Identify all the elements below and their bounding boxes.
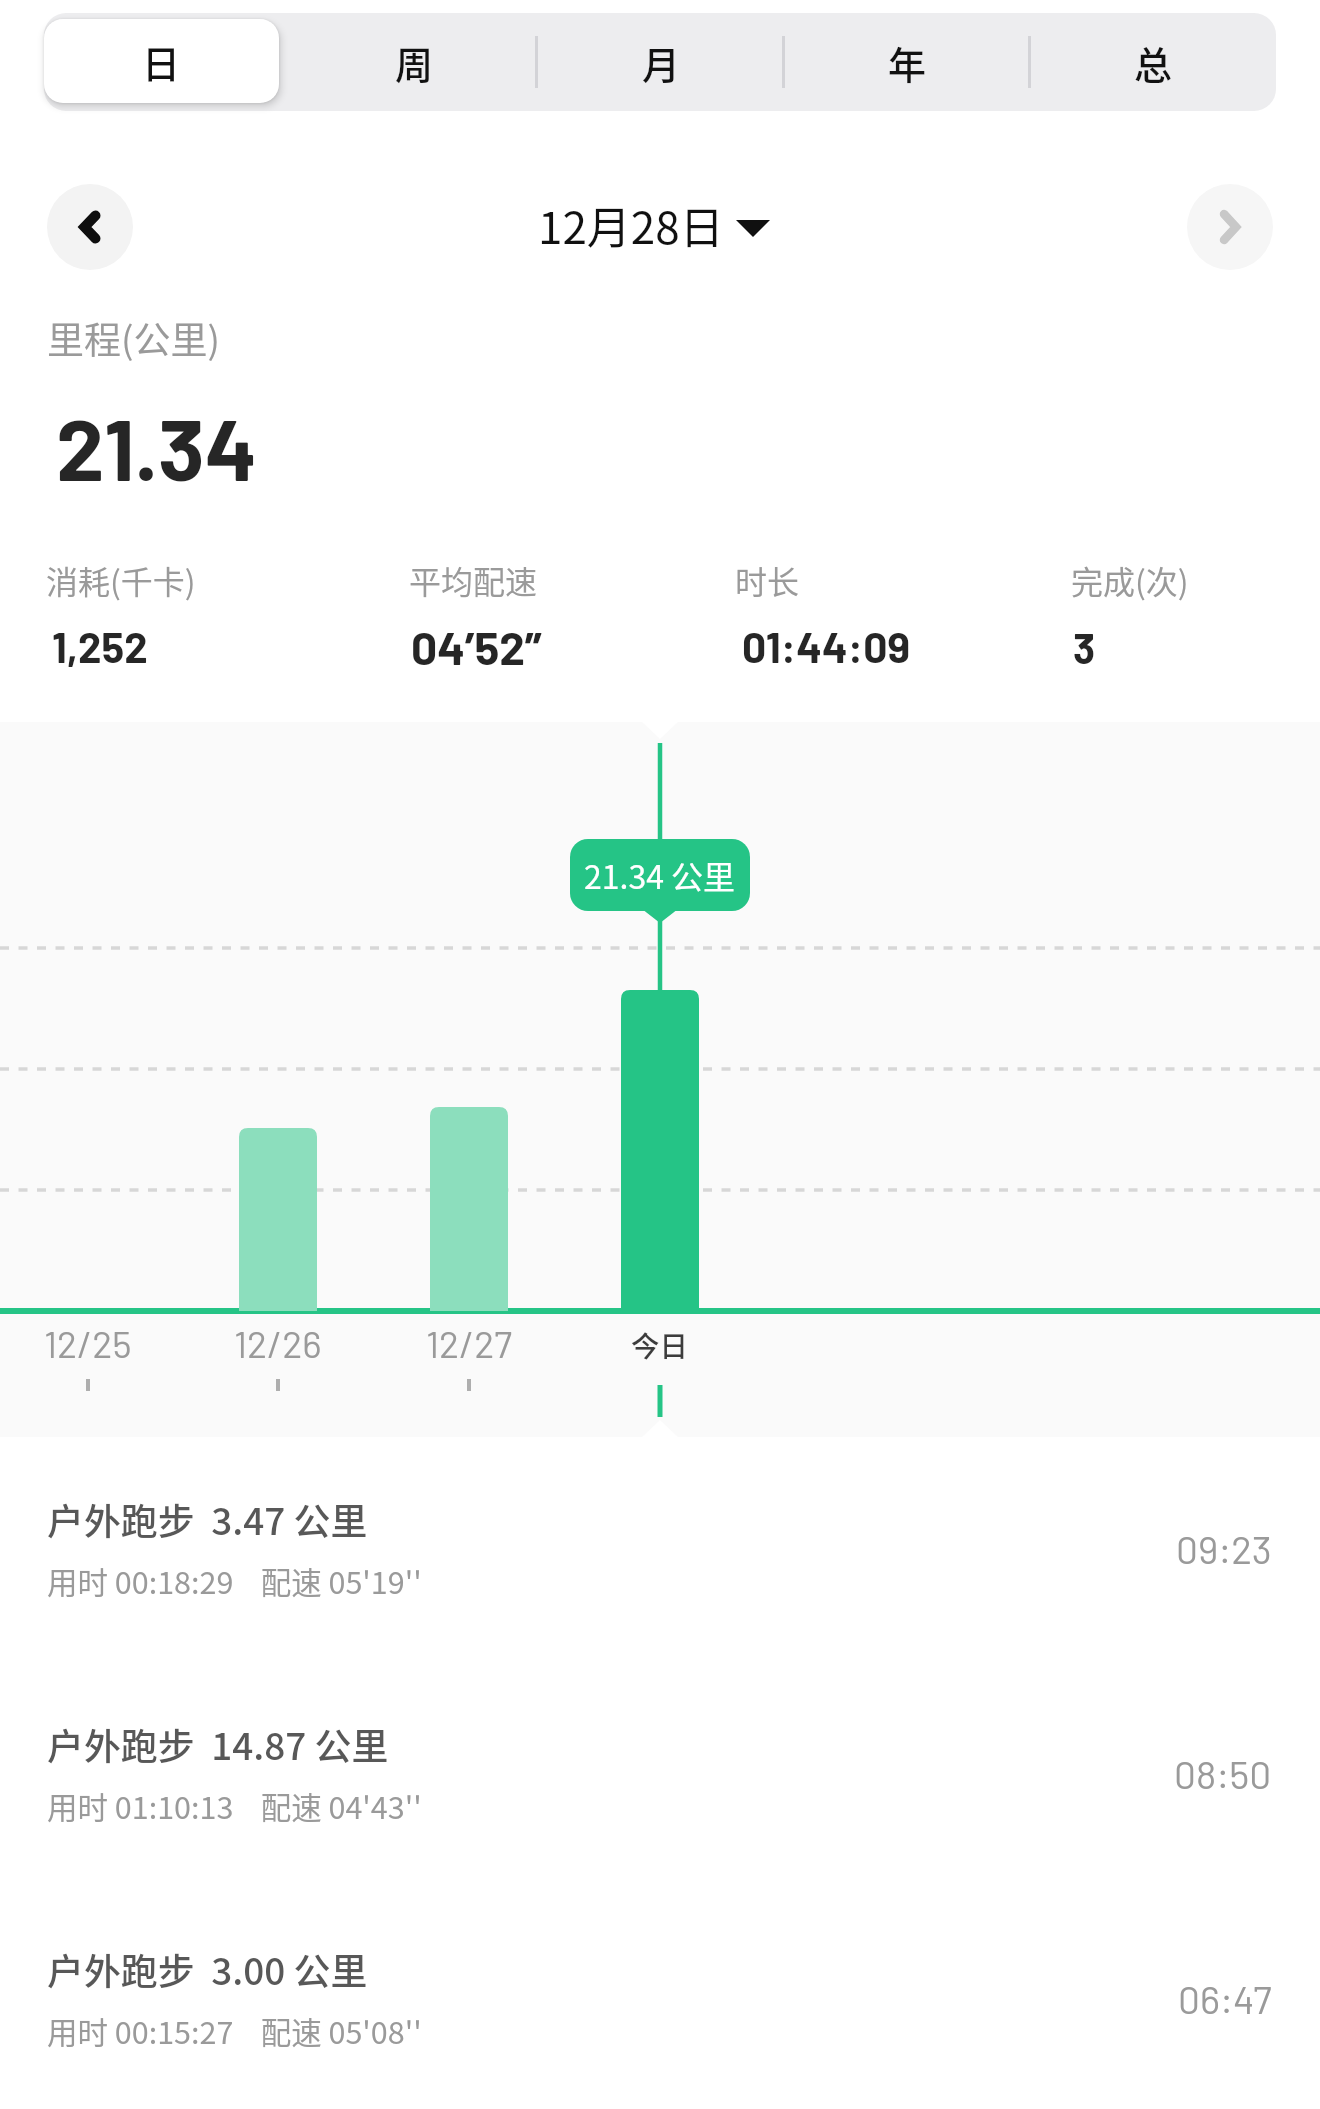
button[interactable]: Previous day <box>47 184 133 270</box>
staticText: 用时 00:15:27 配速 05'08'' <box>47 2009 422 2053</box>
staticText: 12/25 <box>44 1320 132 1365</box>
staticText: 今日 <box>631 1324 688 1365</box>
button[interactable]: Next day <box>1187 184 1273 270</box>
staticText: 户外跑步 14.87 公里 <box>47 1717 389 1770</box>
staticText: 12/27 <box>426 1320 513 1365</box>
staticText: 日 <box>142 34 181 89</box>
button[interactable]: 年 <box>784 13 1030 111</box>
staticText: 消耗(千卡) <box>46 557 196 603</box>
button[interactable]: 户外跑步 3.47 公里 <box>0 1470 1320 1670</box>
staticText: 用时 00:18:29 配速 05'19'' <box>47 1559 422 1603</box>
staticText: 户外跑步 3.47 公里 <box>47 1492 368 1545</box>
button[interactable]: 周 <box>291 13 538 111</box>
button[interactable]: 月 <box>538 13 784 111</box>
staticText: 21.34 公里 <box>584 852 736 898</box>
staticText: 01:44:09 <box>742 620 910 671</box>
button[interactable]: 12月28日 <box>538 193 770 255</box>
staticText: 年 <box>888 35 927 90</box>
staticText: 月 <box>642 35 681 90</box>
staticText: 04’52” <box>411 619 542 674</box>
staticText: 3 <box>1073 623 1096 672</box>
staticText: 08:50 <box>1174 1750 1272 1797</box>
staticText: 总 <box>1134 35 1173 90</box>
staticText: 用时 01:10:13 配速 04'43'' <box>47 1784 422 1828</box>
button[interactable] <box>44 13 291 111</box>
staticText: 12月28日 <box>538 193 724 255</box>
staticText: 周 <box>395 35 434 90</box>
staticText: 1,252 <box>52 621 148 671</box>
staticText: 完成(次) <box>1071 557 1189 603</box>
staticText: 21.34 <box>56 394 258 498</box>
staticText: 户外跑步 3.00 公里 <box>47 1942 368 1995</box>
staticText: 里程(公里) <box>47 311 221 365</box>
staticText: 09:23 <box>1176 1525 1272 1572</box>
button[interactable]: 户外跑步 14.87 公里 <box>0 1695 1320 1895</box>
button[interactable]: 户外跑步 3.00 公里 <box>0 1920 1320 2109</box>
staticText: 时长 <box>735 557 800 603</box>
staticText: 06:47 <box>1178 1975 1272 2022</box>
staticText: 平均配速 <box>409 557 538 603</box>
button[interactable]: 日 <box>44 19 279 103</box>
staticText: 12/26 <box>234 1320 322 1365</box>
button[interactable]: 总 <box>1030 13 1276 111</box>
